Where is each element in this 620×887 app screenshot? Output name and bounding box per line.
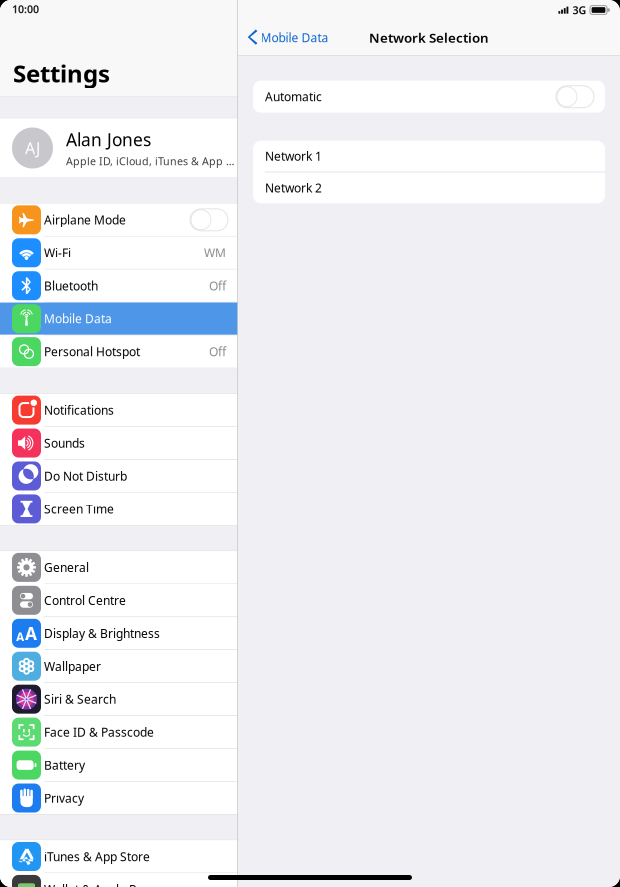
button[interactable]: Network 2 xyxy=(253,172,605,203)
staticText: Face ID & Passcode xyxy=(44,724,154,740)
staticText: Mobile Data xyxy=(260,29,328,45)
staticText: Network Selection xyxy=(369,29,489,46)
staticText: Off xyxy=(209,278,226,294)
staticText: Wallpaper xyxy=(44,658,101,674)
button[interactable]: A xyxy=(0,617,238,649)
staticText: Privacy xyxy=(44,790,84,806)
button[interactable]: Automatic xyxy=(253,81,605,113)
button[interactable]: Privacy xyxy=(0,782,238,814)
button[interactable]: Wallpaper xyxy=(0,650,238,682)
staticText: Sounds xyxy=(44,435,85,451)
button[interactable]: Screen Time xyxy=(0,493,238,525)
staticText: Control Centre xyxy=(44,592,126,608)
button[interactable]: Airplane Mode xyxy=(0,204,238,236)
staticText: Settings xyxy=(13,57,110,89)
staticText: Airplane Mode xyxy=(44,212,126,228)
staticText: A xyxy=(16,629,24,645)
button[interactable]: iTunes & App Store xyxy=(0,840,238,873)
button[interactable]: Do Not Disturb xyxy=(0,460,238,492)
button[interactable]: AJ xyxy=(0,118,238,177)
staticText: Apple ID, iCloud, iTunes & App St… xyxy=(66,154,238,168)
staticText: 3G xyxy=(572,3,586,17)
button[interactable]: Control Centre xyxy=(0,584,238,616)
staticText: Wallet & Apple Pay xyxy=(44,881,149,887)
staticText: AJ xyxy=(25,137,40,159)
button[interactable]: Battery xyxy=(0,749,238,781)
staticText: Notifications xyxy=(44,402,114,418)
staticText: Bluetooth xyxy=(44,278,98,294)
staticText: Automatic xyxy=(265,89,322,105)
staticText: Mobile Data xyxy=(44,311,112,327)
button[interactable]: Notifications xyxy=(0,394,238,426)
button[interactable]: Bluetooth xyxy=(0,270,238,302)
button[interactable]: Face ID & Passcode xyxy=(0,716,238,748)
staticText: Network 2 xyxy=(265,180,322,196)
staticText: Network 1 xyxy=(265,148,322,164)
staticText: Alan Jones xyxy=(66,128,151,151)
button[interactable]: Mobile Data xyxy=(238,29,328,45)
button[interactable]: Wi-Fi xyxy=(0,237,238,269)
staticText: Personal Hotspot xyxy=(44,344,140,360)
staticText: General xyxy=(44,559,89,575)
staticText: Display & Brightness xyxy=(44,625,160,641)
button[interactable]: Siri & Search xyxy=(0,683,238,715)
staticText: Battery xyxy=(44,757,85,773)
staticText: Off xyxy=(209,344,226,360)
staticText: Screen Time xyxy=(44,501,114,517)
staticText: 10:00 xyxy=(12,2,39,16)
button[interactable]: Sounds xyxy=(0,427,238,459)
button[interactable]: General xyxy=(0,551,238,583)
staticText: Siri & Search xyxy=(44,691,116,707)
staticText: Wi-Fi xyxy=(44,245,71,261)
button[interactable]: Network 1 xyxy=(253,141,605,172)
staticText: iTunes & App Store xyxy=(44,848,150,864)
staticText: A xyxy=(25,622,37,645)
staticText: WM xyxy=(204,245,226,261)
button[interactable]: Personal Hotspot xyxy=(0,335,238,368)
button[interactable]: Wallet & Apple Pay xyxy=(0,873,238,887)
button[interactable]: Mobile Data xyxy=(0,303,238,335)
staticText: Do Not Disturb xyxy=(44,468,127,484)
